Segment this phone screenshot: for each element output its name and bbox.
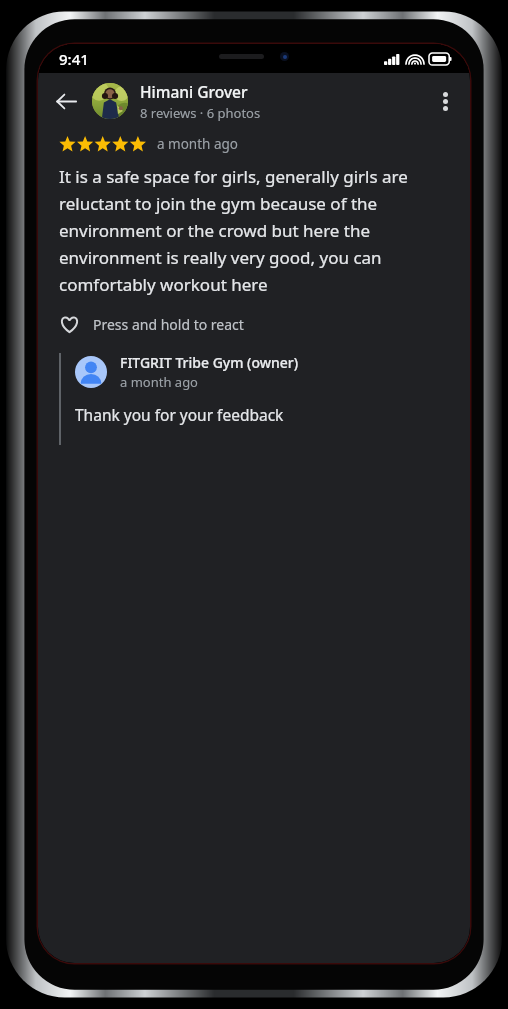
button[interactable]: Press and hold to react <box>59 312 252 337</box>
staticText: FITGRIT Tribe Gym (owner) <box>120 353 299 372</box>
staticText: a month ago <box>157 135 238 153</box>
staticText: Himani Grover <box>140 81 248 102</box>
button[interactable]: Back <box>44 79 88 123</box>
staticText: Thank you for your feedback <box>75 404 284 425</box>
staticText: a month ago <box>120 373 198 391</box>
staticText: 8 reviews · 6 photos <box>140 104 261 122</box>
button[interactable]: More options <box>424 80 466 122</box>
staticText: 9:41 <box>59 49 89 69</box>
staticText: It is a safe space for girls, generally … <box>59 165 453 296</box>
staticText: Press and hold to react <box>93 315 244 334</box>
